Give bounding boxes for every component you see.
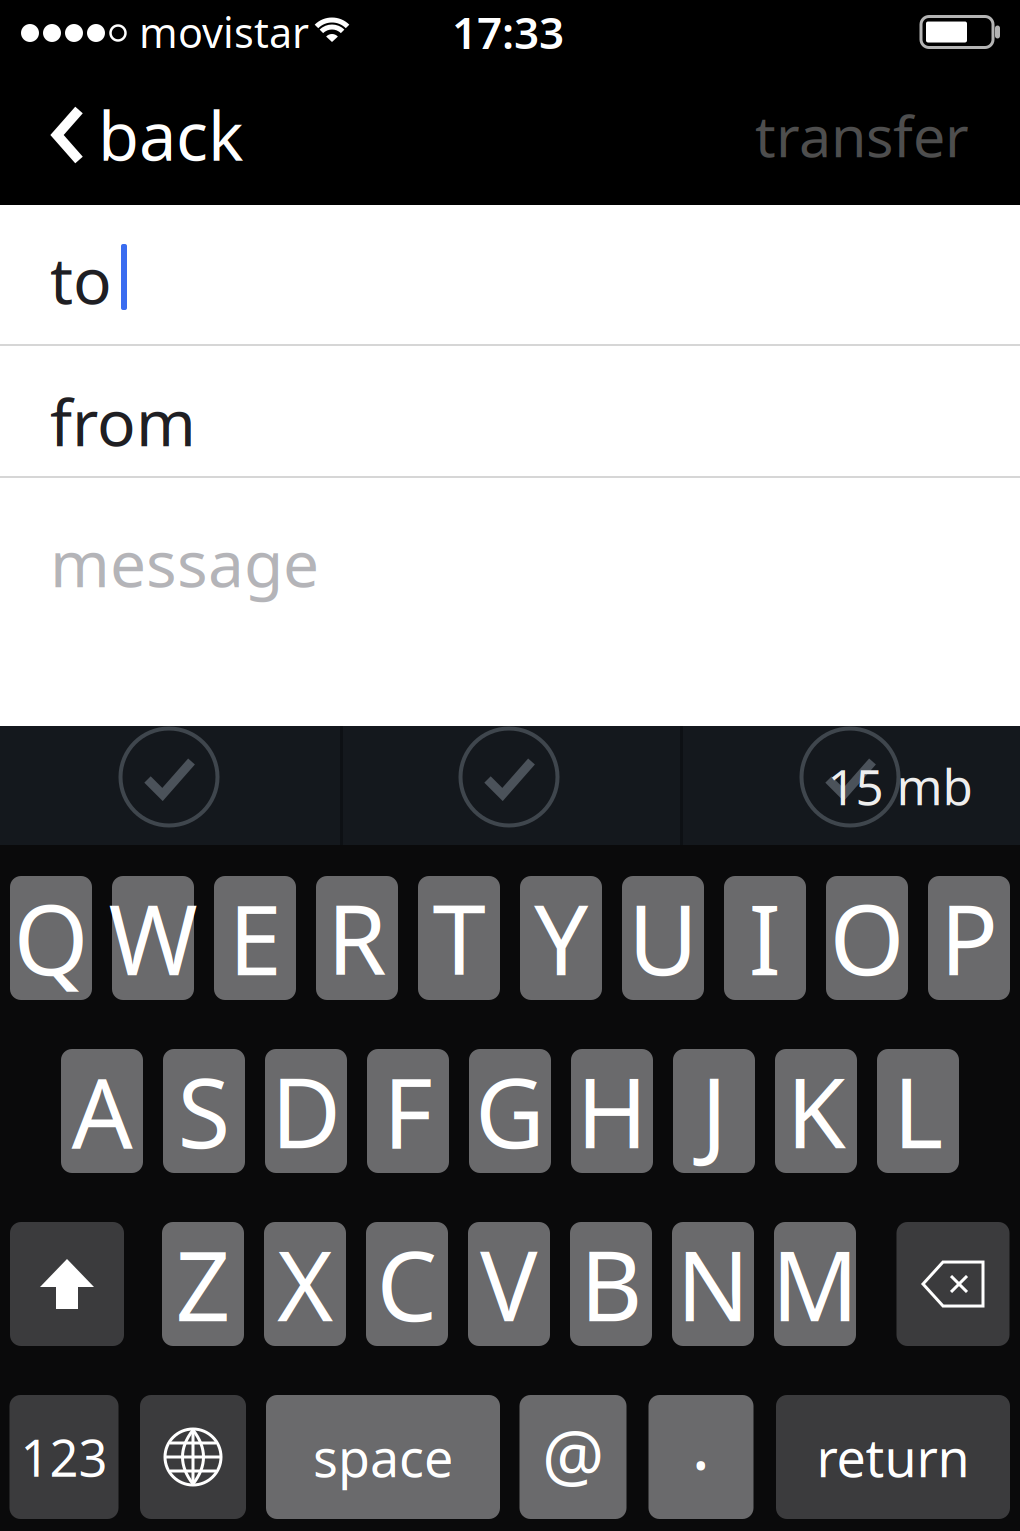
button[interactable]: D xyxy=(265,1049,347,1173)
staticText: L xyxy=(893,1047,943,1175)
staticText: W xyxy=(108,874,197,1002)
button[interactable]: Y xyxy=(520,876,602,1000)
button[interactable]: A xyxy=(61,1049,143,1173)
button[interactable]: W xyxy=(112,876,194,1000)
staticText: T xyxy=(432,874,485,1002)
staticText: R xyxy=(327,874,387,1002)
button[interactable]: space xyxy=(266,1395,500,1519)
button[interactable]: X xyxy=(264,1222,346,1346)
button[interactable]: M xyxy=(774,1222,856,1346)
button[interactable]: U xyxy=(622,876,704,1000)
button[interactable]: R xyxy=(316,876,398,1000)
button[interactable]: return xyxy=(776,1395,1010,1519)
staticText: E xyxy=(228,874,281,1002)
staticText: Z xyxy=(175,1220,230,1348)
staticText: K xyxy=(786,1047,845,1175)
button[interactable]: Q xyxy=(10,876,92,1000)
button[interactable] xyxy=(343,726,680,845)
button[interactable]: back xyxy=(52,91,244,179)
staticText: Y xyxy=(534,874,588,1002)
button[interactable]: . xyxy=(648,1395,753,1519)
staticText: I xyxy=(748,874,781,1002)
staticText: D xyxy=(271,1047,341,1175)
button[interactable]: S xyxy=(163,1049,245,1173)
button[interactable]: 15 mb xyxy=(683,726,1020,845)
button[interactable]: message xyxy=(0,478,1020,726)
staticText: @ xyxy=(542,1408,604,1500)
staticText: return xyxy=(816,1422,969,1492)
button[interactable]: P xyxy=(928,876,1010,1000)
button[interactable]: E xyxy=(214,876,296,1000)
staticText: O xyxy=(829,874,904,1002)
staticText: X xyxy=(277,1220,333,1348)
staticText: M xyxy=(771,1220,858,1348)
staticText: P xyxy=(940,874,998,1002)
button[interactable]: 123 xyxy=(9,1395,118,1519)
button[interactable]: C xyxy=(366,1222,448,1346)
button[interactable] xyxy=(0,726,340,845)
staticText: back xyxy=(98,91,244,179)
staticText: message xyxy=(50,520,319,605)
staticText: from xyxy=(50,379,196,464)
button[interactable]: L xyxy=(877,1049,959,1173)
staticText: . xyxy=(691,1397,710,1489)
button[interactable]: J xyxy=(673,1049,755,1173)
button[interactable] xyxy=(10,1222,124,1346)
staticText: H xyxy=(576,1047,647,1175)
button[interactable]: K xyxy=(775,1049,857,1173)
staticText: U xyxy=(628,874,698,1002)
button[interactable]: F xyxy=(367,1049,449,1173)
staticText: transfer xyxy=(755,97,969,173)
staticText: 17:33 xyxy=(452,3,564,61)
staticText: to xyxy=(50,237,112,322)
staticText: N xyxy=(676,1220,749,1348)
button[interactable]: N xyxy=(672,1222,754,1346)
button[interactable]: H xyxy=(571,1049,653,1173)
button[interactable]: @ xyxy=(519,1395,626,1519)
button[interactable]: transfer xyxy=(755,97,969,173)
button[interactable]: O xyxy=(826,876,908,1000)
staticText: F xyxy=(383,1047,433,1175)
button[interactable]: G xyxy=(469,1049,551,1173)
button[interactable]: from xyxy=(0,346,1020,476)
staticText: 15 mb xyxy=(827,753,972,819)
staticText: C xyxy=(376,1220,437,1348)
staticText: S xyxy=(177,1047,230,1175)
button[interactable]: V xyxy=(468,1222,550,1346)
staticText: space xyxy=(313,1422,453,1492)
staticText: B xyxy=(580,1220,642,1348)
staticText: V xyxy=(480,1220,538,1348)
button[interactable]: Z xyxy=(162,1222,244,1346)
staticText: movistar xyxy=(139,5,309,59)
staticText: Q xyxy=(13,874,88,1002)
button[interactable] xyxy=(896,1222,1009,1346)
button[interactable]: to xyxy=(0,205,1020,344)
button[interactable]: T xyxy=(418,876,500,1000)
staticText: G xyxy=(475,1047,545,1175)
button[interactable] xyxy=(140,1395,246,1519)
button[interactable]: I xyxy=(724,876,806,1000)
staticText: J xyxy=(701,1047,727,1175)
staticText: 123 xyxy=(20,1423,107,1491)
button[interactable]: B xyxy=(570,1222,652,1346)
staticText: A xyxy=(71,1047,132,1175)
